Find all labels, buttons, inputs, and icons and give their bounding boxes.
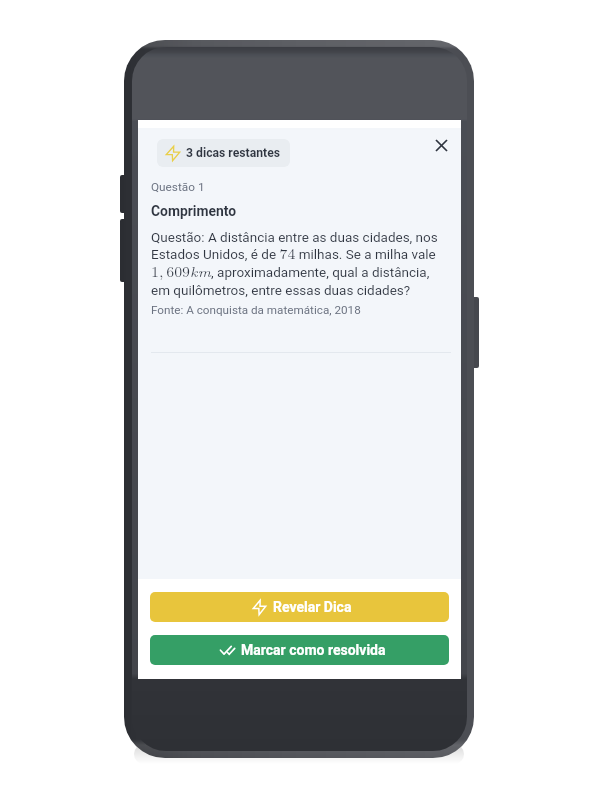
staticText: Revelar Dica [273,599,352,615]
button[interactable]: Fechar [429,133,453,157]
staticText: Marcar como resolvida [241,642,386,658]
staticText: Comprimento [151,203,237,219]
button[interactable]: Revelar Dica [150,592,449,622]
staticText: Questão: A distância entre as duas cidad… [151,229,451,299]
button[interactable]: Marcar como resolvida [150,635,449,665]
staticText: 3 dicas restantes [186,146,280,160]
button[interactable]: 3 dicas restantes [157,139,290,167]
staticText: Questão 1 [151,180,205,194]
staticText: Fonte: A conquista da matemática, 2018 [151,303,361,317]
